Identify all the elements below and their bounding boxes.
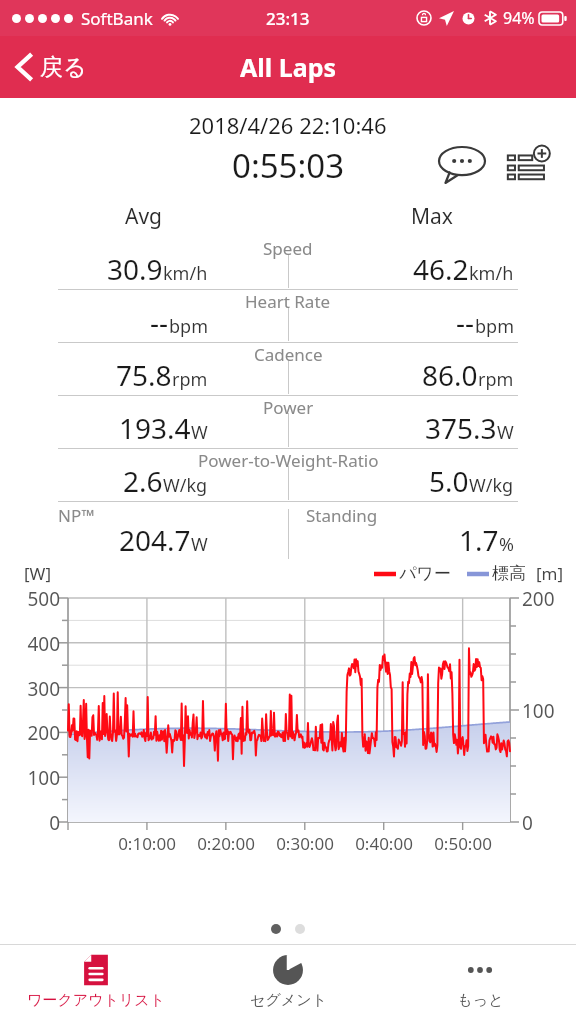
staticText: W/kg: [163, 473, 208, 498]
staticText: W: [191, 420, 208, 445]
button[interactable]: セグメント: [192, 945, 384, 1024]
staticText: 200: [522, 586, 555, 612]
staticText: 200: [10, 720, 60, 746]
staticText: 75.8: [116, 356, 172, 394]
staticText: 5.0: [429, 462, 469, 500]
staticText: bpm: [475, 314, 514, 339]
staticText: 0:10:00: [107, 832, 187, 855]
staticText: 100: [522, 698, 555, 724]
staticText: Cadence: [254, 343, 323, 366]
staticText: All Laps: [240, 50, 337, 84]
button[interactable]: もっと: [384, 945, 576, 1024]
staticText: 1.7: [459, 521, 499, 559]
button[interactable]: Power: [0, 395, 576, 448]
staticText: 0:30:00: [265, 832, 345, 855]
button[interactable]: Comments: [434, 142, 490, 188]
staticText: 500: [10, 586, 60, 612]
staticText: 46.2: [413, 250, 469, 288]
staticText: rpm: [478, 367, 514, 392]
button[interactable]: 戻る: [0, 46, 101, 88]
staticText: 0:40:00: [344, 832, 424, 855]
staticText: [W]: [24, 562, 51, 585]
staticText: [m]: [536, 562, 564, 585]
staticText: W: [497, 420, 514, 445]
staticText: bpm: [169, 314, 208, 339]
staticText: 23:13: [266, 7, 310, 30]
staticText: %: [499, 532, 514, 557]
staticText: km/h: [469, 261, 514, 286]
button[interactable]: ワークアウトリスト: [0, 945, 192, 1024]
staticText: 戻る: [40, 53, 87, 82]
staticText: パワー: [399, 563, 451, 584]
staticText: 0:50:00: [423, 832, 503, 855]
staticText: 0:55:03: [232, 143, 345, 188]
staticText: 標高: [492, 563, 526, 584]
staticText: Avg: [125, 202, 163, 231]
staticText: Power: [263, 396, 314, 419]
staticText: Speed: [263, 237, 313, 260]
staticText: 0: [10, 810, 60, 836]
staticText: 2.6: [123, 462, 163, 500]
staticText: 30.9: [107, 250, 163, 288]
button[interactable]: Heart Rate: [0, 289, 576, 342]
staticText: 0: [522, 810, 533, 836]
staticText: Heart Rate: [245, 290, 331, 313]
staticText: 193.4: [119, 409, 191, 447]
staticText: 400: [10, 631, 60, 657]
staticText: もっと: [457, 991, 504, 1010]
button[interactable]: Speed: [0, 236, 576, 289]
staticText: 300: [10, 676, 60, 702]
staticText: 94%: [503, 7, 535, 29]
staticText: 204.7: [119, 521, 191, 559]
staticText: rpm: [172, 367, 208, 392]
staticText: セグメント: [250, 991, 327, 1010]
staticText: 375.3: [425, 409, 497, 447]
staticText: 100: [10, 765, 60, 791]
button[interactable]: Power-to-Weight-Ratio: [0, 448, 576, 501]
staticText: --: [456, 303, 475, 341]
staticText: 86.0: [422, 356, 478, 394]
staticText: --: [150, 303, 169, 341]
staticText: 2018/4/26 22:10:46: [189, 110, 387, 140]
button[interactable]: Cadence: [0, 342, 576, 395]
staticText: W/kg: [469, 473, 514, 498]
staticText: NP™: [58, 504, 95, 527]
staticText: Standing: [306, 504, 378, 527]
button[interactable]: Add to list: [502, 142, 554, 188]
button[interactable]: NP™: [0, 502, 576, 560]
staticText: ワークアウトリスト: [27, 991, 165, 1010]
staticText: SoftBank: [81, 7, 153, 30]
staticText: Max: [411, 202, 453, 231]
staticText: W: [191, 532, 208, 557]
staticText: 0:20:00: [186, 832, 266, 855]
staticText: Power-to-Weight-Ratio: [198, 449, 379, 472]
staticText: km/h: [163, 261, 208, 286]
